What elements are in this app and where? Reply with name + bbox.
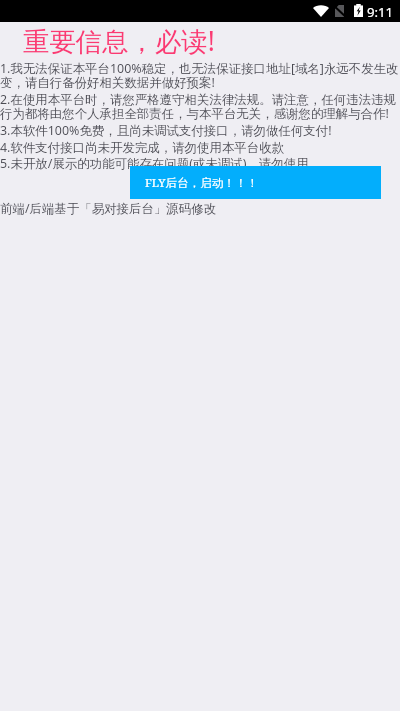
staticText: 重要信息，必读! [23,23,215,59]
other: Battery charging [354,4,363,17]
staticText: 前端/后端基于「易对接后台」源码修改 [0,200,400,217]
staticText: 9:11 [367,3,394,21]
staticText: 1.我无法保证本平台100%稳定，也无法保证接口地址[域名]永远不发生改变，请自… [0,60,400,91]
staticText: 3.本软件100%免费，且尚未调试支付接口，请勿做任何支付! [0,122,400,139]
staticText: 4.软件支付接口尚未开发完成，请勿使用本平台收款 [0,139,400,156]
staticText: FLY后台，启动！！！ [145,175,259,191]
button[interactable]: FLY后台，启动！！！ [130,166,381,199]
staticText: 5.未开放/展示的功能可能存在问题(或未调试)，请勿使用 [0,155,400,172]
other: No SIM card [335,5,344,17]
other: Wi-Fi signal [313,4,329,17]
staticText: 2.在使用本平台时，请您严格遵守相关法律法规。请注意，任何违法违规行为都将由您个… [0,91,400,122]
